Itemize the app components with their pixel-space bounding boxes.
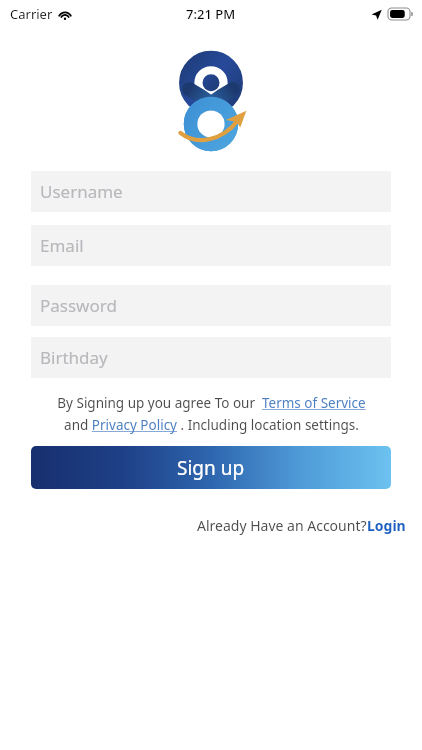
- staticText: By Signing up you agree To our Terms of …: [57, 394, 366, 412]
- staticText: Login: [367, 516, 406, 535]
- button[interactable]: Password: [31, 285, 391, 326]
- button[interactable]: Birthday: [31, 337, 391, 378]
- button[interactable]: Sign up: [31, 446, 391, 489]
- staticText: Already Have an Account?: [197, 516, 367, 535]
- staticText: Username: [40, 180, 123, 203]
- staticText: Birthday: [40, 346, 108, 369]
- button[interactable]: By Signing up you agree To our Terms of …: [0, 394, 422, 434]
- button[interactable]: Email: [31, 225, 391, 266]
- staticText: and Privacy Policy . Including location …: [64, 416, 359, 434]
- staticText: Email: [40, 234, 84, 257]
- button[interactable]: Already Have an Account?: [197, 516, 406, 535]
- staticText: 7:21 PM: [186, 5, 236, 23]
- staticText: Carrier: [10, 5, 53, 23]
- staticText: Password: [40, 294, 117, 317]
- staticText: Sign up: [177, 455, 245, 481]
- button[interactable]: Username: [31, 171, 391, 212]
